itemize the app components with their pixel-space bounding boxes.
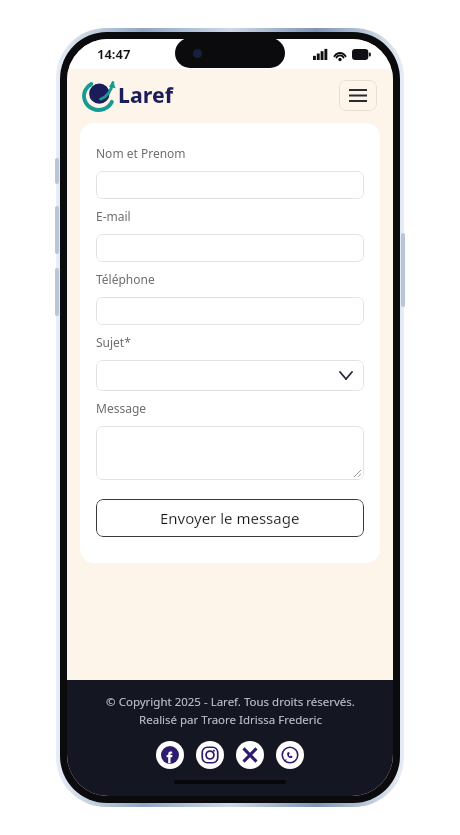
staticText: 14:47: [97, 45, 131, 63]
button[interactable]: [96, 171, 364, 199]
staticText: Laref: [118, 81, 174, 110]
button[interactable]: [96, 234, 364, 262]
staticText: E-mail: [96, 208, 131, 224]
button[interactable]: X: [236, 741, 264, 769]
staticText: Sujet*: [96, 334, 131, 350]
staticText: Realisé par Traore Idrissa Frederic: [139, 712, 322, 728]
staticText: Message: [96, 400, 147, 416]
button[interactable]: Menu: [339, 80, 377, 111]
button[interactable]: Laref: [83, 78, 174, 112]
button[interactable]: Instagram: [196, 741, 224, 769]
button[interactable]: Facebook: [156, 741, 184, 769]
button[interactable]: [96, 426, 364, 480]
staticText: Nom et Prenom: [96, 145, 186, 161]
button[interactable]: Envoyer le message: [96, 499, 364, 537]
staticText: Envoyer le message: [160, 508, 300, 528]
staticText: © Copyright 2025 - Laref. Tous droits ré…: [106, 694, 355, 710]
button[interactable]: WhatsApp: [276, 741, 304, 769]
button[interactable]: [96, 297, 364, 325]
button[interactable]: Sujet: [96, 360, 364, 391]
staticText: Téléphone: [96, 271, 155, 287]
